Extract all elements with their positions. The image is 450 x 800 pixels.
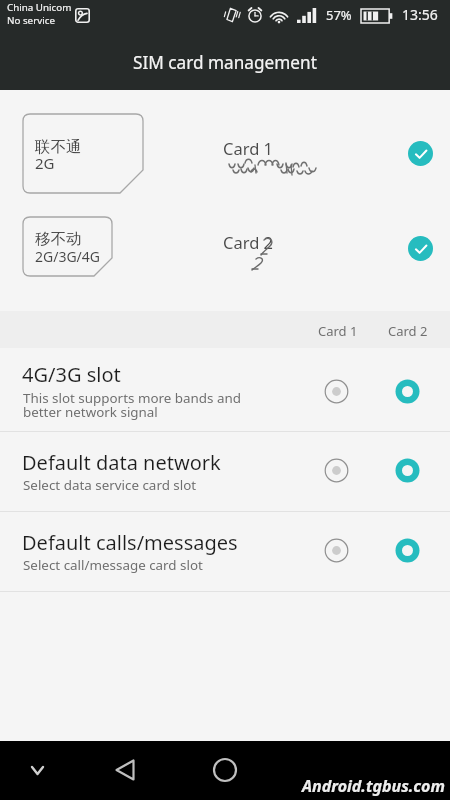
button[interactable]: 4G/3G slot [0, 348, 450, 432]
button[interactable]: Default data network card 2 [395, 458, 420, 483]
staticText: 57% [326, 6, 352, 24]
button[interactable]: Card 1 enabled [408, 141, 433, 166]
button[interactable]: Default calls/messages card 1 [324, 538, 349, 563]
staticText: China Unicom [7, 1, 72, 14]
button[interactable]: Home [210, 755, 240, 785]
button[interactable]: Card 2 enabled [408, 236, 433, 261]
staticText: Card 2 [223, 231, 274, 253]
staticText: Default calls/messages [22, 529, 238, 556]
button[interactable]: Back [110, 755, 140, 785]
staticText: 2G [35, 153, 55, 173]
staticText: Select data service card slot [23, 476, 197, 494]
button[interactable]: Default calls/messages [0, 512, 450, 592]
staticText: This slot supports more bands and better… [23, 389, 241, 421]
staticText: 4G/3G slot [22, 361, 121, 388]
button[interactable]: Default data network card 1 [324, 458, 349, 483]
staticText: Card 1 [223, 137, 274, 159]
button[interactable]: Default calls/messages card 2 [395, 538, 420, 563]
staticText: 2G/3G/4G [35, 247, 101, 266]
staticText: Select call/message card slot [23, 556, 203, 574]
button[interactable]: 4G/3G slot card 2 [395, 379, 420, 404]
staticText: Card 1 [318, 322, 358, 340]
staticText: Android.tgbus.com [302, 775, 445, 797]
staticText: No service [7, 14, 55, 27]
button[interactable]: 联不通 [0, 98, 450, 203]
staticText: 移不动 [35, 229, 82, 249]
button[interactable]: Default data network [0, 432, 450, 512]
button[interactable]: Hide keyboard [23, 756, 52, 785]
button[interactable]: 4G/3G slot card 1 [324, 379, 349, 404]
staticText: 联不通 [35, 137, 82, 157]
staticText: Default data network [22, 449, 221, 476]
staticText: SIM card management [133, 51, 317, 74]
button[interactable]: 移不动 [0, 205, 450, 305]
staticText: 13:56 [402, 5, 438, 24]
staticText: Card 2 [388, 322, 428, 340]
